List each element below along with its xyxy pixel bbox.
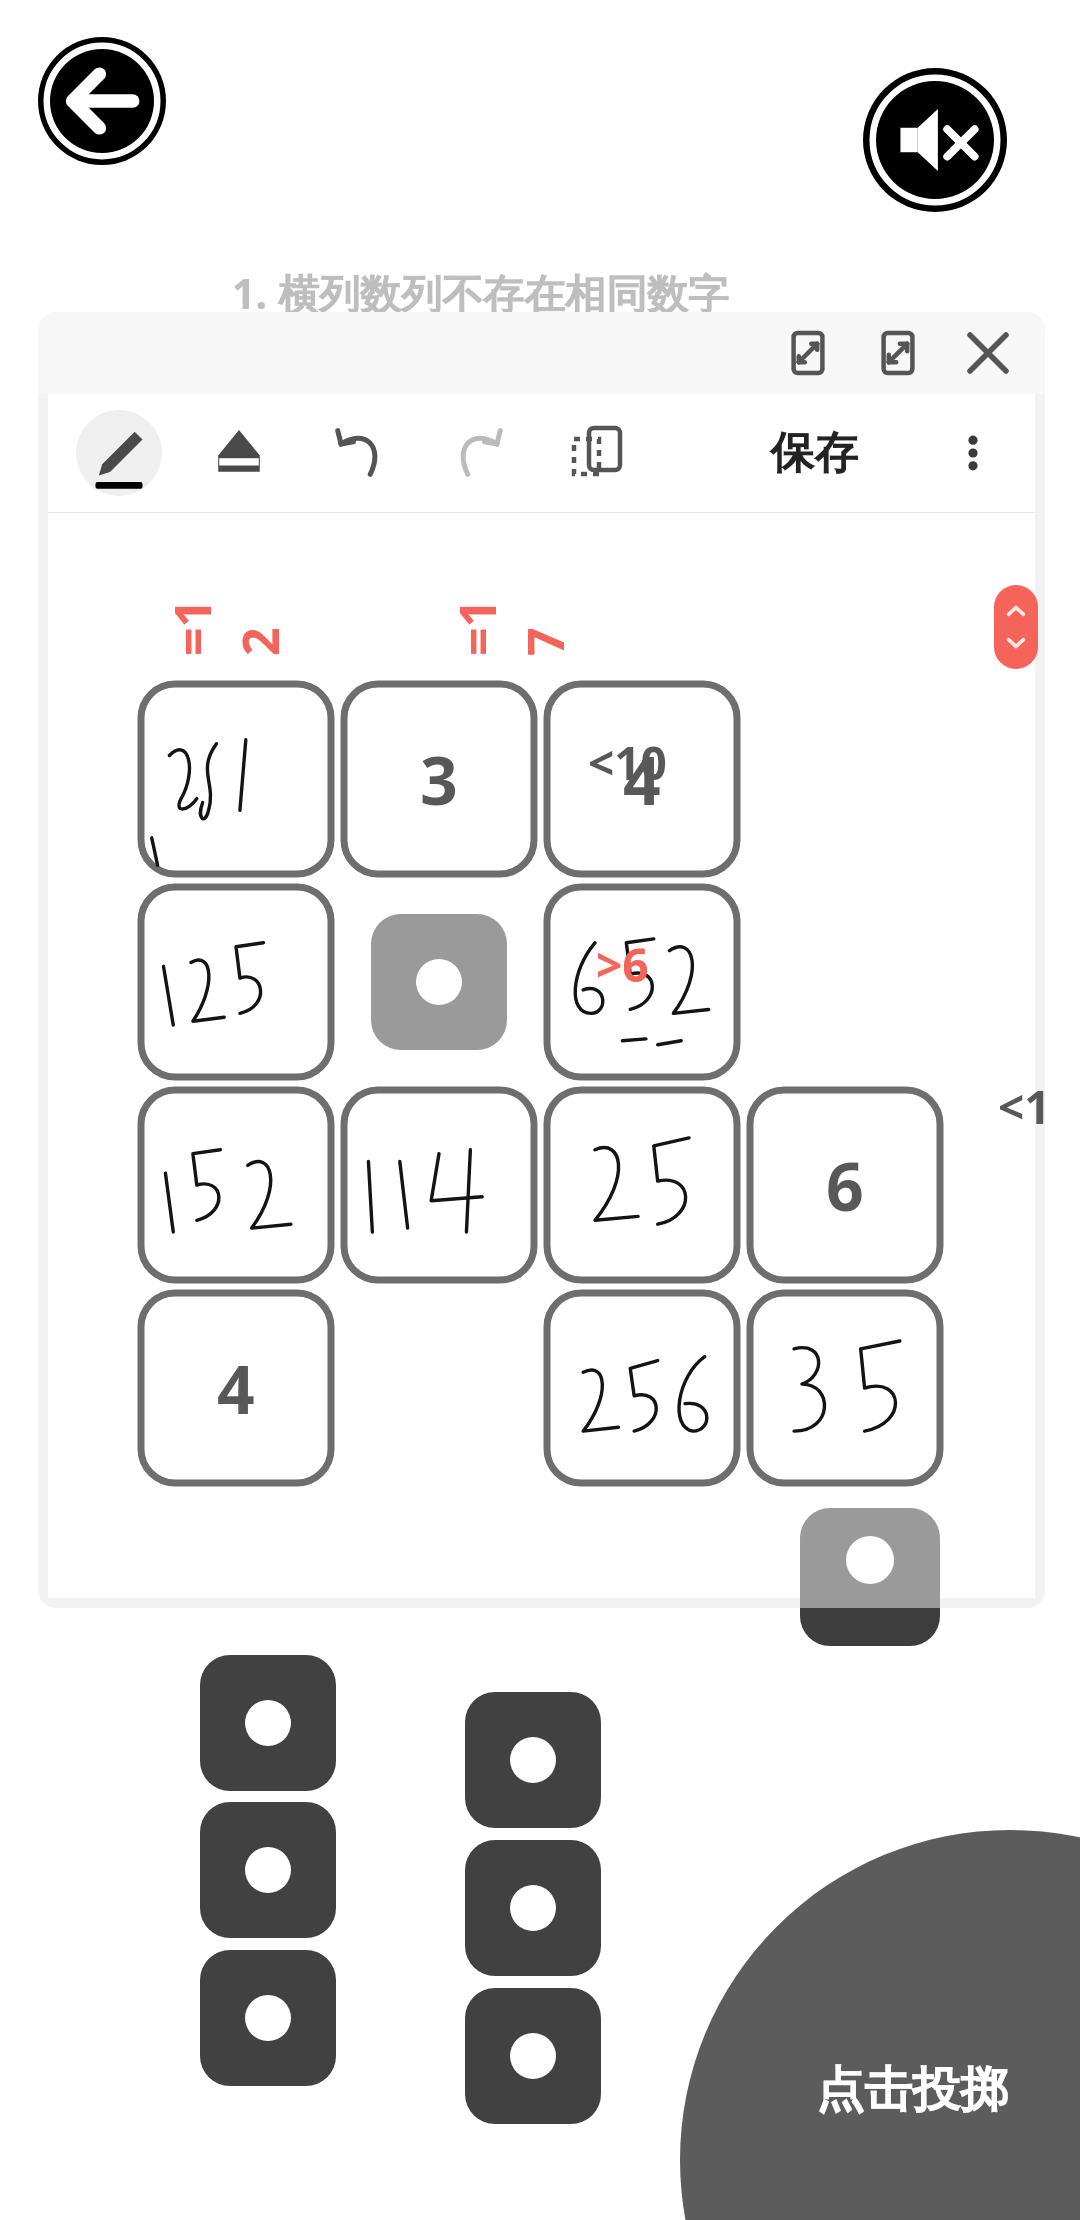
button[interactable]: 6 <box>747 1087 943 1283</box>
button[interactable]: 点击投掷 <box>0 0 1080 2220</box>
button[interactable]: Expand <box>867 322 929 384</box>
button[interactable]: Die <box>371 914 507 1050</box>
staticText: 3 <box>420 734 458 824</box>
button[interactable]: Mute <box>863 68 1007 212</box>
staticText: 4 <box>623 734 661 824</box>
button[interactable]: Die <box>465 1692 601 1828</box>
staticText: <10 <box>588 731 667 794</box>
button[interactable]: Pen <box>76 410 162 496</box>
staticText: =12 <box>158 596 288 656</box>
button[interactable] <box>138 681 334 877</box>
button[interactable]: 保存 <box>770 406 858 500</box>
button[interactable]: Back <box>38 37 166 165</box>
button[interactable]: Undo <box>316 410 402 496</box>
button[interactable]: Scroll <box>994 585 1038 669</box>
button[interactable] <box>747 1290 943 1486</box>
button[interactable] <box>341 1087 537 1283</box>
staticText: 1. 横列数列不存在相同数字 <box>232 265 729 321</box>
button[interactable] <box>544 884 740 1080</box>
staticText: =17 <box>443 596 573 656</box>
button[interactable] <box>544 1087 740 1283</box>
button[interactable]: Die <box>465 1988 601 2124</box>
button[interactable]: Select <box>556 410 642 496</box>
button[interactable]: 4 <box>544 681 740 877</box>
button[interactable] <box>544 1290 740 1486</box>
button[interactable] <box>138 1087 334 1283</box>
staticText: 保存 <box>770 426 858 481</box>
button[interactable]: Shrink <box>777 322 839 384</box>
staticText: 6 <box>826 1140 864 1230</box>
button[interactable]: 4 <box>138 1290 334 1486</box>
button[interactable]: Die <box>200 1950 336 2086</box>
button[interactable]: Die <box>465 1840 601 1976</box>
button[interactable]: Die <box>200 1655 336 1791</box>
button[interactable]: Die <box>200 1802 336 1938</box>
staticText: >6 <box>596 933 649 996</box>
button[interactable]: More options <box>930 410 1016 496</box>
button[interactable] <box>138 884 334 1080</box>
staticText: 4 <box>217 1343 255 1433</box>
button[interactable]: Eraser <box>196 410 282 496</box>
staticText: 点击投掷 <box>816 2060 1008 2120</box>
button[interactable]: Redo <box>436 410 522 496</box>
button[interactable]: Close <box>957 322 1019 384</box>
staticText: <16 <box>998 1075 1045 1138</box>
button[interactable]: 3 <box>341 681 537 877</box>
